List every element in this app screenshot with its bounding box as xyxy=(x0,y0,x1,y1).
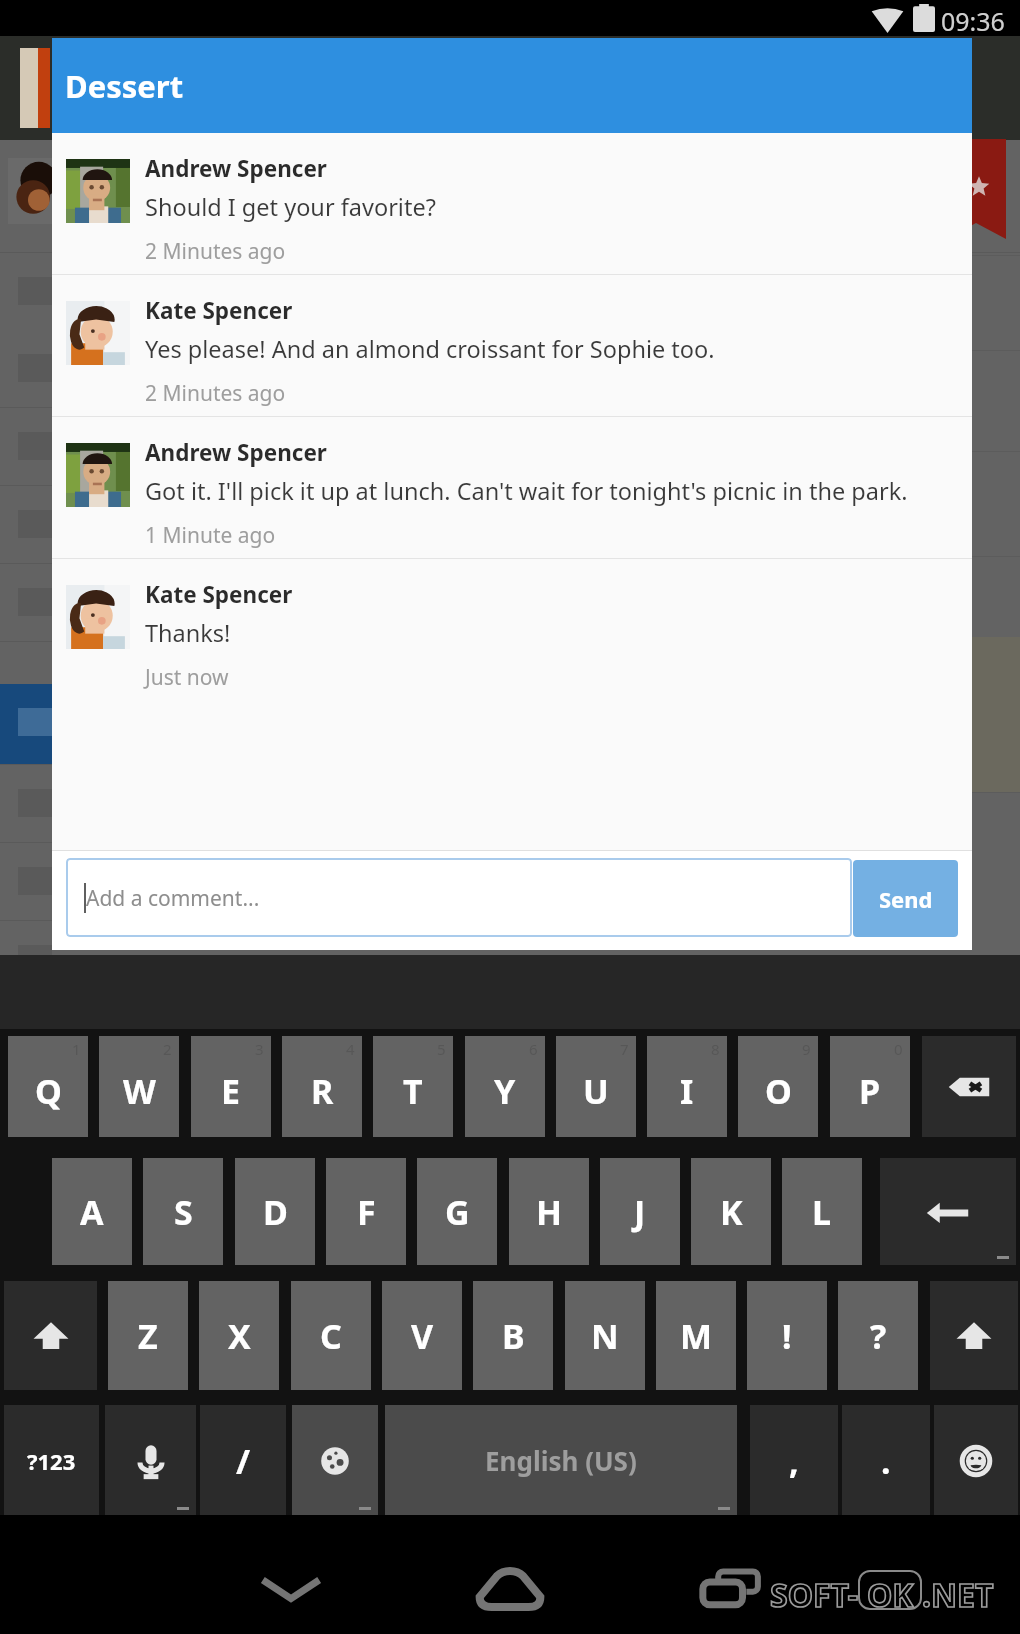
staticText: Kate Spencer xyxy=(145,579,293,610)
staticText: Y xyxy=(494,1068,516,1114)
button[interactable]: J xyxy=(600,1158,680,1265)
staticText: Yes please! And an almond croissant for … xyxy=(145,333,715,365)
button[interactable]: emoji xyxy=(934,1405,1018,1516)
button[interactable]: Home xyxy=(450,1549,570,1629)
staticText: H xyxy=(536,1189,563,1235)
staticText: V xyxy=(411,1313,434,1359)
button[interactable]: ? xyxy=(838,1281,918,1390)
button[interactable]: shift xyxy=(930,1281,1018,1390)
staticText: Add a comment... xyxy=(86,884,260,913)
staticText: O xyxy=(765,1068,792,1114)
button[interactable]: Back xyxy=(231,1549,351,1629)
button[interactable]: Andrew Spencer xyxy=(52,417,972,558)
button[interactable]: H xyxy=(509,1158,589,1265)
button[interactable]: Andrew Spencer xyxy=(52,133,972,274)
staticText: W xyxy=(123,1068,156,1114)
button[interactable]: shift xyxy=(4,1281,97,1390)
staticText: Just now xyxy=(145,663,229,692)
button[interactable]: P xyxy=(830,1036,910,1137)
staticText: Andrew Spencer xyxy=(145,153,327,184)
button[interactable]: Kate Spencer xyxy=(52,559,972,700)
button[interactable]: Send xyxy=(853,860,958,937)
button[interactable]: V xyxy=(382,1281,462,1390)
button[interactable]: F xyxy=(326,1158,406,1265)
staticText: 6 xyxy=(529,1039,538,1059)
button[interactable]: globe xyxy=(292,1405,378,1516)
other: shift xyxy=(28,1313,74,1359)
button[interactable]: English (US) xyxy=(385,1405,737,1516)
button[interactable]: Kate Spencer xyxy=(52,275,972,416)
staticText: P xyxy=(859,1068,881,1114)
staticText: ?123 xyxy=(27,1446,76,1476)
button[interactable]: T xyxy=(373,1036,453,1137)
button[interactable]: E xyxy=(191,1036,271,1137)
staticText: Kate Spencer xyxy=(145,295,293,326)
button[interactable]: Add a comment... xyxy=(66,858,852,937)
button[interactable]: S xyxy=(143,1158,223,1265)
staticText: 1 xyxy=(72,1039,81,1059)
other: globe xyxy=(312,1438,358,1484)
button[interactable]: Dessert xyxy=(52,38,972,133)
staticText: Andrew Spencer xyxy=(145,437,327,468)
button[interactable]: R xyxy=(282,1036,362,1137)
staticText: C xyxy=(320,1313,342,1359)
staticText: . xyxy=(881,1438,891,1484)
staticText: 7 xyxy=(620,1039,629,1059)
staticText: .NET xyxy=(922,1573,994,1617)
staticText: ! xyxy=(782,1313,792,1359)
button[interactable]: B xyxy=(473,1281,553,1390)
staticText: Send xyxy=(879,884,933,914)
staticText: U xyxy=(583,1068,609,1114)
button[interactable]: M xyxy=(656,1281,736,1390)
staticText: S xyxy=(174,1189,193,1235)
button[interactable]: C xyxy=(291,1281,371,1390)
staticText: 1 Minute ago xyxy=(145,521,276,550)
button[interactable]: L xyxy=(782,1158,862,1265)
staticText: Should I get your favorite? xyxy=(145,191,436,223)
staticText: Q xyxy=(35,1068,62,1114)
other: shift xyxy=(951,1313,997,1359)
staticText: M xyxy=(680,1313,713,1359)
staticText: Thanks! xyxy=(145,617,231,649)
staticText: B xyxy=(502,1313,525,1359)
staticText: E xyxy=(221,1068,241,1114)
button[interactable]: Y xyxy=(465,1036,545,1137)
staticText: A xyxy=(80,1189,104,1235)
button[interactable]: A xyxy=(52,1158,132,1265)
staticText: SOFT- xyxy=(770,1573,858,1617)
button[interactable]: W xyxy=(99,1036,179,1137)
staticText: English (US) xyxy=(485,1443,637,1478)
button[interactable]: . xyxy=(842,1405,930,1516)
button[interactable]: X xyxy=(199,1281,279,1390)
button[interactable]: del xyxy=(922,1036,1016,1137)
staticText: , xyxy=(789,1438,799,1484)
button[interactable]: ! xyxy=(747,1281,827,1390)
staticText: T xyxy=(403,1068,423,1114)
button[interactable]: I xyxy=(647,1036,727,1137)
staticText: ? xyxy=(870,1313,887,1359)
other: enter xyxy=(925,1189,971,1235)
button[interactable]: enter xyxy=(880,1158,1016,1265)
button[interactable]: Z xyxy=(108,1281,188,1390)
other: del xyxy=(946,1064,992,1110)
button[interactable]: G xyxy=(417,1158,497,1265)
button[interactable]: N xyxy=(565,1281,645,1390)
button[interactable]: Recents xyxy=(670,1549,790,1629)
button[interactable]: O xyxy=(738,1036,818,1137)
staticText: K xyxy=(720,1189,743,1235)
staticText: Got it. I'll pick it up at lunch. Can't … xyxy=(145,475,908,507)
button[interactable]: , xyxy=(750,1405,838,1516)
button[interactable]: D xyxy=(235,1158,315,1265)
button[interactable]: Q xyxy=(8,1036,88,1137)
button[interactable]: U xyxy=(556,1036,636,1137)
staticText: 2 xyxy=(163,1039,172,1059)
button[interactable]: K xyxy=(691,1158,771,1265)
staticText: OK xyxy=(867,1573,914,1617)
staticText: 3 xyxy=(255,1039,264,1059)
staticText: J xyxy=(634,1189,646,1235)
button[interactable]: mic xyxy=(105,1405,196,1516)
staticText: 8 xyxy=(711,1039,720,1059)
button[interactable]: ?123 xyxy=(4,1405,99,1516)
staticText: 09:36 xyxy=(941,4,1005,38)
button[interactable]: / xyxy=(200,1405,286,1516)
